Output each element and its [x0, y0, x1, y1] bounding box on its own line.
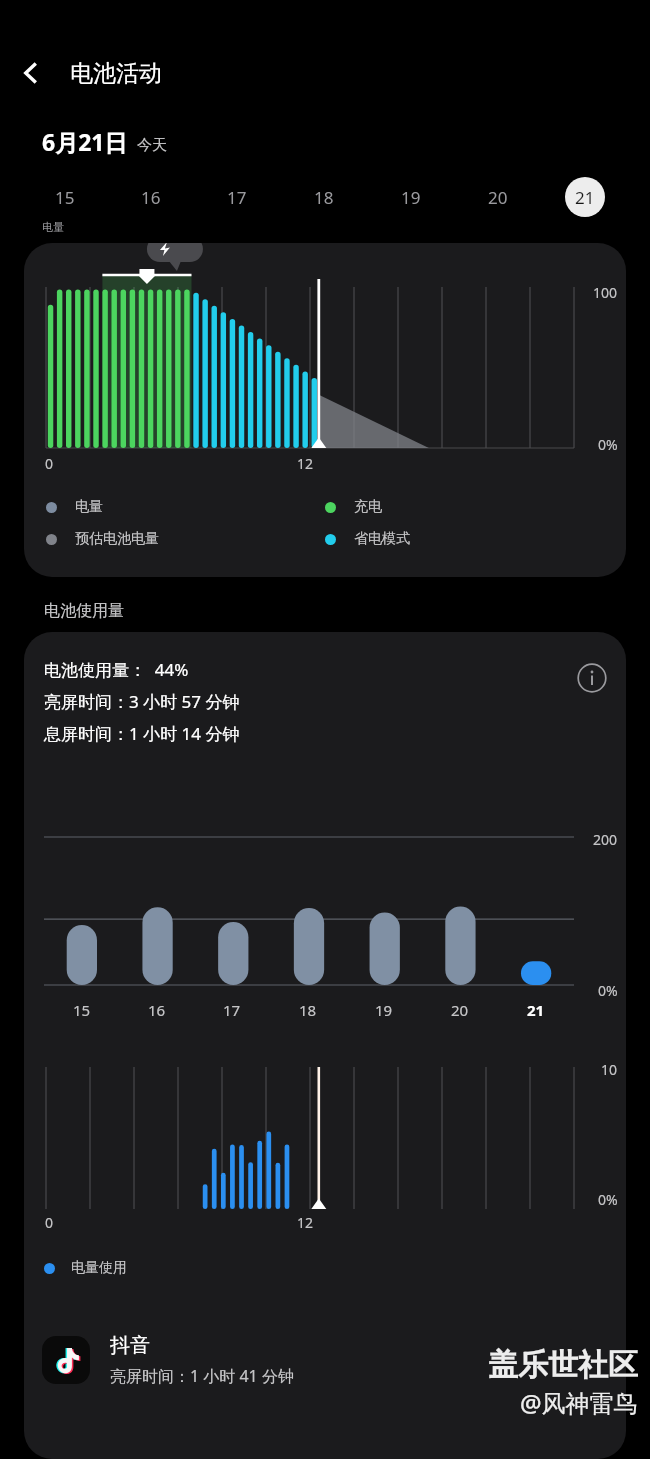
- staticText: 15: [73, 1000, 91, 1020]
- button[interactable]: 21: [541, 175, 628, 219]
- staticText: 12: [297, 1213, 314, 1232]
- staticText: 亮屏时间：3 小时 57 分钟: [44, 690, 240, 713]
- staticText: 20: [451, 1000, 469, 1020]
- staticText: 100: [593, 283, 618, 302]
- staticText: 16: [141, 186, 161, 209]
- staticText: @风神雷鸟: [520, 1386, 638, 1419]
- staticText: 21: [575, 186, 595, 209]
- staticText: 电池使用量: [44, 601, 124, 621]
- staticText: 电池活动: [70, 59, 162, 88]
- button[interactable]: 17: [194, 175, 280, 219]
- staticText: 电池使用量： 44%: [44, 658, 189, 681]
- staticText: 充电: [354, 498, 382, 516]
- button[interactable]: Back: [0, 44, 62, 102]
- staticText: 省电模式: [354, 530, 410, 548]
- staticText: 16: [148, 1000, 166, 1020]
- staticText: 200: [593, 830, 618, 849]
- button[interactable]: 16: [108, 175, 194, 219]
- button[interactable]: 抖音: [24, 1321, 626, 1399]
- staticText: 12: [297, 454, 314, 473]
- staticText: 17: [223, 1000, 241, 1020]
- staticText: 18: [299, 1000, 317, 1020]
- staticText: 0%: [598, 1190, 618, 1209]
- button[interactable]: 15: [22, 175, 108, 219]
- staticText: 0%: [598, 435, 618, 454]
- staticText: 19: [401, 186, 421, 209]
- staticText: 0: [45, 454, 54, 473]
- staticText: 预估电池电量: [75, 530, 159, 548]
- button[interactable]: 18: [280, 175, 367, 219]
- button[interactable]: 20: [454, 175, 541, 219]
- staticText: 电量: [42, 220, 64, 234]
- staticText: 6月21日: [42, 126, 128, 157]
- staticText: 17: [227, 186, 247, 209]
- staticText: 18: [314, 186, 334, 209]
- staticText: 电量使用: [71, 1259, 127, 1277]
- staticText: 10: [601, 1060, 618, 1079]
- staticText: 息屏时间：1 小时 14 分钟: [44, 722, 240, 745]
- staticText: 抖音: [110, 1333, 150, 1358]
- staticText: 亮屏时间：1 小时 41 分钟: [110, 1365, 294, 1387]
- staticText: 21: [527, 1000, 545, 1020]
- staticText: 电量: [75, 498, 103, 516]
- staticText: 19: [375, 1000, 393, 1020]
- button[interactable]: Info: [572, 658, 612, 698]
- staticText: 0: [45, 1213, 54, 1232]
- staticText: 15: [55, 186, 75, 209]
- button[interactable]: 19: [367, 175, 454, 219]
- button[interactable]: 100: [24, 243, 626, 577]
- staticText: 0%: [598, 981, 618, 1000]
- staticText: 盖乐世社区: [488, 1346, 638, 1384]
- staticText: 20: [488, 186, 508, 209]
- staticText: 今天: [137, 136, 167, 155]
